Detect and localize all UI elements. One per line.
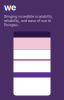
staticText: Bringing incredible scalability, reliabi… <box>4 14 53 27</box>
staticText: we <box>4 2 16 12</box>
